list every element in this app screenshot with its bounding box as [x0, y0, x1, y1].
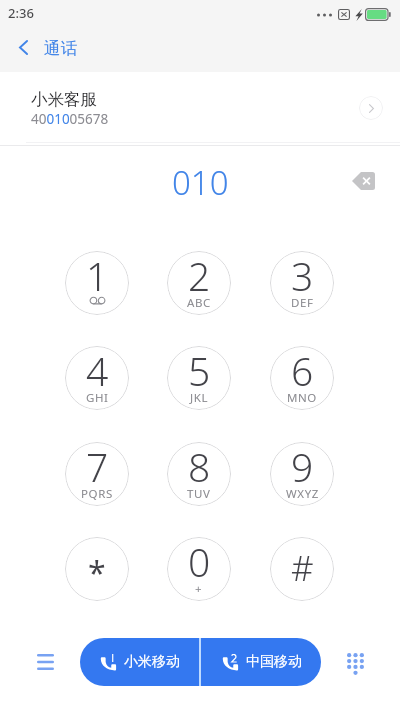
staticText: 4001005678 [31, 110, 109, 128]
staticText: 7 [86, 442, 109, 493]
staticText: 通话 [44, 38, 77, 59]
staticText: 9 [291, 442, 314, 493]
staticText: 6 [291, 346, 314, 397]
button[interactable]: 0 [167, 537, 231, 601]
staticText: ABC [187, 295, 211, 311]
button[interactable]: 小米移动 [80, 638, 199, 686]
staticText: TUV [187, 486, 211, 502]
button[interactable]: 6 [270, 346, 334, 410]
button[interactable]: 5 [167, 346, 231, 410]
staticText: 小米移动 [124, 653, 180, 671]
staticText: 2:36 [8, 4, 34, 22]
staticText: 010 [172, 160, 229, 205]
button[interactable]: * [65, 537, 129, 601]
staticText: 0 [188, 537, 211, 588]
staticText: WXYZ [286, 486, 319, 502]
button[interactable]: 4 [65, 346, 129, 410]
button[interactable]: 8 [167, 442, 231, 506]
button[interactable]: Contact details [359, 96, 383, 120]
staticText: * [88, 551, 106, 595]
button[interactable]: Backspace [346, 164, 380, 198]
staticText: 8 [188, 442, 211, 493]
staticText: 1 [86, 251, 109, 302]
staticText: # [291, 544, 314, 592]
staticText: JKL [190, 390, 209, 406]
staticText: PQRS [81, 486, 113, 502]
button[interactable]: 1 [65, 251, 129, 315]
button[interactable]: 小米客服 [0, 76, 400, 141]
button[interactable]: 7 [65, 442, 129, 506]
staticText: DEF [291, 295, 314, 311]
staticText: 小米客服 [31, 89, 97, 110]
staticText: 3 [291, 251, 314, 302]
button[interactable]: 9 [270, 442, 334, 506]
staticText: 中国移动 [246, 653, 302, 671]
staticText: MNO [287, 390, 317, 406]
button[interactable]: 中国移动 [201, 638, 321, 686]
button[interactable]: Dialpad [333, 640, 377, 688]
button[interactable]: 3 [270, 251, 334, 315]
button[interactable]: 2 [167, 251, 231, 315]
button[interactable]: Back [6, 30, 40, 64]
staticText: 2 [188, 251, 211, 302]
staticText: 4 [86, 346, 109, 397]
staticText: 5 [188, 346, 211, 397]
button[interactable]: # [270, 537, 334, 601]
button[interactable]: Menu [23, 638, 67, 686]
staticText: + [195, 581, 203, 597]
staticText: GHI [86, 390, 109, 406]
